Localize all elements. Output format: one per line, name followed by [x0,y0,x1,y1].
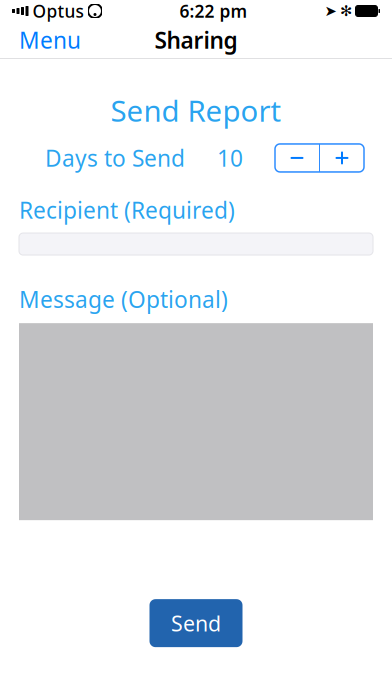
staticText: Send Report [110,91,281,130]
staticText: 6:22 pm [179,0,247,22]
staticText: ➤ [324,3,336,19]
staticText: Send [171,609,221,637]
staticText: Menu [19,25,81,55]
button[interactable]: Decrease days to send [275,144,319,172]
staticText: Recipient (Required) [19,195,235,225]
staticText: Optus [32,0,83,22]
staticText: Sharing [154,25,237,55]
staticText: 10 [217,143,243,173]
button[interactable]: Send [149,599,242,647]
button[interactable]: Menu [15,19,85,61]
staticText: ✻ [340,3,352,19]
button[interactable]: Increase days to send [320,144,364,172]
staticText: Days to Send [45,143,185,173]
staticText: Message (Optional) [19,284,228,314]
